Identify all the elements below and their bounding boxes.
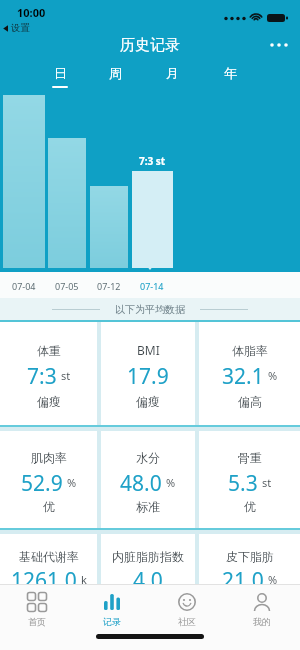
staticText: 皮下脂肪	[226, 549, 274, 564]
staticText: 1261.0	[11, 566, 77, 592]
button[interactable]: 内脏脂肪指数	[101, 534, 195, 631]
button[interactable]: 日	[40, 62, 80, 84]
button[interactable]: 月	[152, 62, 192, 84]
staticText: 偏高	[238, 394, 262, 409]
staticText: 标准	[136, 499, 160, 514]
button[interactable]: 皮下脂肪	[199, 534, 300, 631]
staticText: 07-04	[12, 280, 36, 292]
button[interactable]: 07-05	[45, 279, 89, 293]
staticText: %	[268, 572, 278, 587]
button[interactable]: 07-12	[87, 279, 131, 293]
staticText: 我的	[253, 616, 271, 627]
staticText: 月	[166, 65, 179, 81]
staticText: st	[262, 475, 272, 490]
staticText: 52.9	[21, 469, 63, 495]
button[interactable]: 设置	[2, 22, 30, 34]
button[interactable]: 我的	[232, 588, 292, 632]
staticText: 7:3 st	[139, 154, 166, 168]
staticText: 周	[109, 65, 122, 81]
button[interactable]: 基础代谢率	[0, 534, 97, 631]
button[interactable]: 07-04	[2, 279, 46, 293]
staticText: 社区	[178, 616, 196, 627]
staticText: 历史记录	[120, 36, 180, 54]
button[interactable]: 肌肉率	[0, 431, 97, 528]
staticText: 体重	[37, 343, 61, 358]
staticText: st	[61, 368, 71, 383]
button[interactable]: 记录	[82, 588, 142, 632]
staticText: 17.9	[127, 362, 169, 388]
staticText: 水分	[136, 450, 160, 465]
staticText: 21.0	[222, 566, 264, 592]
staticText: 设置	[11, 22, 30, 34]
button[interactable]: 年	[210, 62, 250, 84]
button[interactable]: 周	[95, 62, 135, 84]
staticText: 32.1	[222, 362, 264, 388]
staticText: 07-12	[97, 280, 121, 292]
staticText: BMI	[137, 342, 160, 358]
button[interactable]	[268, 38, 292, 52]
staticText: 07-14	[140, 280, 164, 292]
staticText: 以下为平均数据	[115, 303, 185, 316]
staticText: 首页	[28, 616, 46, 627]
staticText: 07-05	[55, 280, 79, 292]
staticText: 年	[224, 65, 237, 81]
button[interactable]: 体重	[0, 322, 97, 425]
staticText: 日	[54, 65, 67, 81]
button[interactable]: 首页	[7, 588, 67, 632]
staticText: 基础代谢率	[19, 549, 79, 564]
button[interactable]: 07-14	[130, 279, 174, 293]
staticText: 10:00	[17, 5, 46, 20]
staticText: %	[268, 368, 278, 383]
button[interactable]: 水分	[101, 431, 195, 528]
button[interactable]: 体脂率	[199, 322, 300, 425]
button[interactable]: BMI	[101, 322, 195, 425]
staticText: 记录	[103, 616, 121, 627]
button[interactable]: 骨重	[199, 431, 300, 528]
button[interactable]: 社区	[157, 588, 217, 632]
staticText: %	[166, 475, 176, 490]
staticText: 偏瘦	[37, 394, 61, 409]
staticText: 7:3	[27, 362, 57, 388]
staticText: 48.0	[120, 469, 162, 495]
staticText: 优	[43, 499, 55, 514]
staticText: 偏瘦	[136, 394, 160, 409]
staticText: 5.3	[228, 469, 258, 495]
staticText: 骨重	[238, 450, 262, 465]
staticText: 体脂率	[232, 343, 268, 358]
staticText: 4.0	[133, 566, 163, 592]
staticText: 优	[244, 499, 256, 514]
staticText: 肌肉率	[31, 450, 67, 465]
staticText: 内脏脂肪指数	[112, 549, 184, 564]
staticText: %	[67, 475, 77, 490]
staticText: k	[81, 572, 87, 587]
